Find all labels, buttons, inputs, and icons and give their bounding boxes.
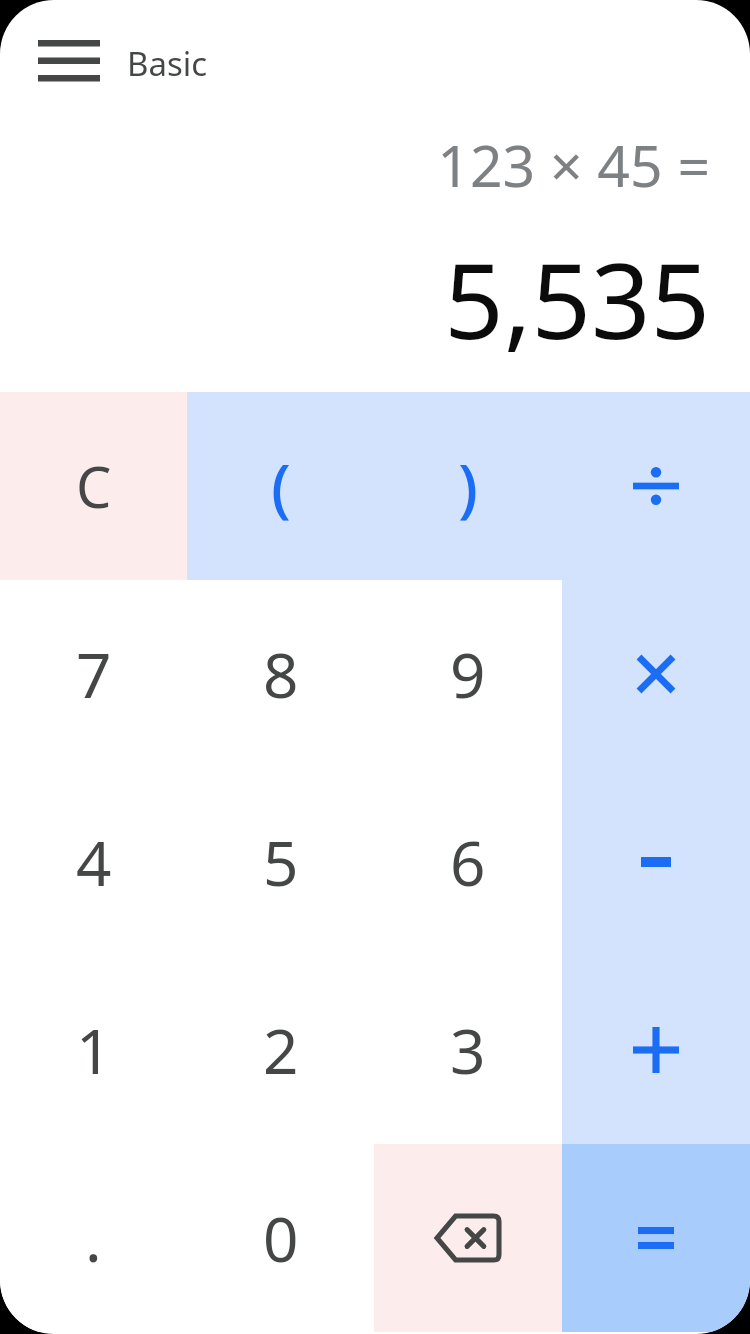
staticText: Basic (127, 41, 208, 86)
staticText: 3 (450, 1008, 486, 1092)
button[interactable]: C (0, 392, 187, 580)
staticText: 1 (76, 1008, 112, 1092)
button[interactable]: 8 (187, 580, 374, 768)
button[interactable]: Open menu (22, 22, 116, 100)
button[interactable]: Open parenthesis (187, 392, 374, 580)
staticText: . (85, 1196, 102, 1280)
button[interactable]: Equals (562, 1144, 750, 1332)
staticText: ( (271, 443, 291, 530)
button[interactable]: 1 (0, 956, 187, 1144)
staticText: 6 (450, 820, 486, 904)
staticText: 9 (450, 632, 486, 716)
button[interactable]: Decimal point (0, 1144, 187, 1332)
staticText: ) (458, 443, 478, 530)
staticText: 2 (263, 1008, 299, 1092)
button[interactable]: 2 (187, 956, 374, 1144)
staticText: 0 (263, 1196, 299, 1280)
button[interactable]: 3 (374, 956, 562, 1144)
staticText: 123 × 45 = (437, 126, 710, 204)
staticText: C (76, 448, 112, 524)
button[interactable]: Plus (562, 956, 750, 1144)
button[interactable]: Close parenthesis (374, 392, 562, 580)
button[interactable]: 6 (374, 768, 562, 956)
button[interactable]: 0 (187, 1144, 374, 1332)
button[interactable]: 4 (0, 768, 187, 956)
button[interactable]: Backspace (374, 1144, 562, 1332)
staticText: 8 (263, 632, 299, 716)
staticText: 4 (76, 820, 112, 904)
button[interactable]: 9 (374, 580, 562, 768)
button[interactable]: Multiply (562, 580, 750, 768)
button[interactable]: Divide (562, 392, 750, 580)
button[interactable]: Minus (562, 768, 750, 956)
staticText: 5,535 (444, 228, 710, 370)
staticText: 7 (76, 632, 112, 716)
staticText: 5 (263, 820, 299, 904)
button[interactable]: 7 (0, 580, 187, 768)
button[interactable]: 5 (187, 768, 374, 956)
